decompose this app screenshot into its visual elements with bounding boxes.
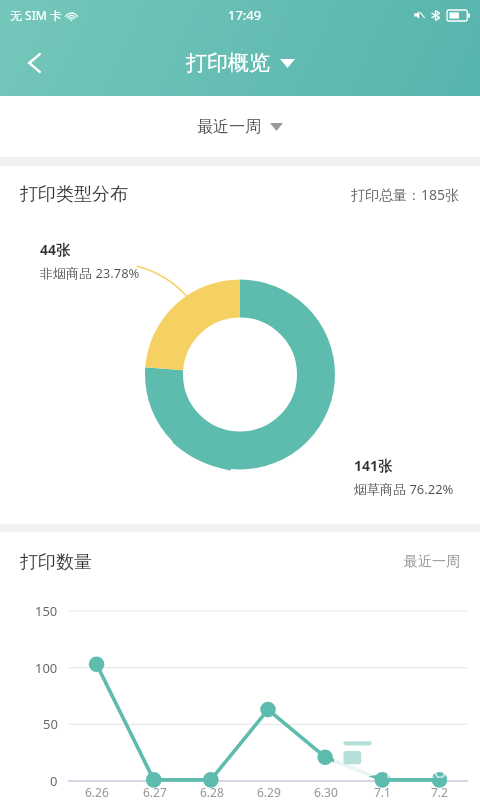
staticText: 7.1 bbox=[374, 784, 391, 800]
staticText: 打印数量 bbox=[20, 551, 92, 574]
button[interactable]: 最近一周 bbox=[187, 111, 293, 143]
staticText: 6.29 bbox=[257, 784, 281, 800]
staticText: 非烟商品 23.78% bbox=[40, 264, 140, 282]
staticText: 55下载 bbox=[386, 722, 478, 762]
staticText: 6.30 bbox=[314, 784, 338, 800]
button[interactable]: Back bbox=[8, 36, 62, 90]
staticText: 150 bbox=[35, 602, 58, 620]
staticText: 50 bbox=[43, 715, 58, 733]
staticText: 打印总量：185张 bbox=[351, 185, 460, 204]
staticText: 打印概览 bbox=[186, 50, 270, 76]
staticText: 6.26 bbox=[85, 784, 109, 800]
staticText: 最近一周 bbox=[197, 117, 261, 137]
staticText: 最近一周 bbox=[404, 553, 460, 571]
staticText: 打印类型分布 bbox=[20, 183, 128, 206]
staticText: 0 bbox=[50, 772, 58, 790]
staticText: 无 SIM 卡 bbox=[10, 7, 62, 23]
staticText: 17:49 bbox=[228, 6, 262, 24]
staticText: 6.28 bbox=[200, 784, 224, 800]
staticText: 7.2 bbox=[431, 784, 448, 800]
staticText: RR55.COM bbox=[386, 762, 460, 782]
staticText: 烟草商品 76.22% bbox=[354, 480, 454, 498]
staticText: 100 bbox=[35, 659, 58, 677]
staticText: 44张 bbox=[40, 240, 71, 259]
button[interactable]: 打印概览 bbox=[178, 44, 303, 82]
staticText: 6.27 bbox=[143, 784, 167, 800]
staticText: 141张 bbox=[354, 456, 393, 475]
